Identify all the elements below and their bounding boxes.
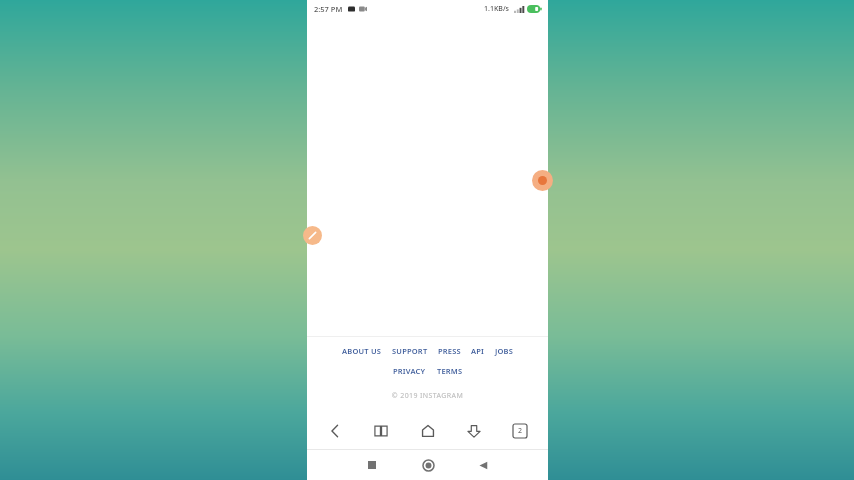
button[interactable]: Home [415,452,441,478]
staticText: PRIVACY [393,366,426,376]
staticText: ABOUT US [342,346,382,356]
button[interactable]: Downloads [456,413,492,449]
button[interactable]: TERMS [436,365,464,377]
staticText: SUPPORT [392,346,428,356]
staticText: 2:57 PM [314,4,343,14]
button[interactable]: ABOUT US [341,345,383,357]
button[interactable]: Back [317,413,353,449]
button[interactable]: API [470,345,486,357]
button[interactable]: PRIVACY [392,365,427,377]
button[interactable]: SUPPORT [391,345,429,357]
staticText: TERMS [437,366,463,376]
button[interactable]: Floating action [303,226,322,245]
button[interactable]: JOBS [494,345,515,357]
button[interactable]: Tabs, 2 open [502,413,538,449]
staticText: 2 [518,426,523,436]
button[interactable]: Home [410,413,446,449]
button[interactable]: Floating tool [532,170,553,191]
staticText: © 2019 INSTAGRAM [307,391,548,401]
staticText: API [471,346,485,356]
button[interactable]: Bookmarks [363,413,399,449]
button[interactable]: Recent apps [359,452,385,478]
button[interactable]: PRESS [437,345,462,357]
staticText: 1.1KB/s [484,4,510,14]
staticText: PRESS [438,346,461,356]
button[interactable]: Back [470,452,496,478]
staticText: JOBS [495,346,514,356]
